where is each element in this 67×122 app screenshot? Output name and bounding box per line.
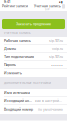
- staticText: по умолчанию: [38, 107, 63, 111]
- staticText: Изменить: [4, 71, 22, 75]
- staticText: Исходящий номер: [4, 99, 32, 103]
- staticText: Рабочая запись: [4, 39, 31, 43]
- button[interactable]: Пароль: [0, 61, 67, 69]
- button[interactable]: Изменить: [0, 69, 67, 77]
- staticText: sip.101.ru: [49, 39, 63, 43]
- staticText: 9:41: [4, 0, 10, 4]
- staticText: ⏺ ▮: [59, 0, 63, 4]
- button[interactable]: Профиль: [62, 4, 65, 9]
- staticText: Входящий номер: [4, 107, 33, 111]
- staticText: Заказать продление: [16, 22, 51, 26]
- button[interactable]: Домен: [0, 45, 67, 53]
- staticText: как в настройках: [35, 99, 63, 103]
- staticText: sip.101.ru: [49, 55, 63, 59]
- button[interactable]: Заказать продление: [2, 19, 65, 29]
- staticText: voip.ru: [52, 47, 63, 51]
- button[interactable]: Исходящий номер: [0, 97, 67, 105]
- staticText: Пароль: [4, 63, 16, 67]
- staticText: УЧЕТНАЯ ЗАПИСЬ: [4, 31, 31, 35]
- staticText: Тип подключения: [4, 55, 34, 59]
- staticText: Домен: [4, 47, 16, 51]
- button[interactable]: Входящий номер: [0, 105, 67, 114]
- button[interactable]: Имя источника: [0, 89, 67, 97]
- staticText: Учетная запись: [34, 4, 61, 8]
- button[interactable]: Тип подключения: [0, 53, 67, 61]
- staticText: Имя источника: [4, 91, 30, 95]
- staticText: Рейтинг записи: [2, 4, 28, 8]
- staticText: SIP: [45, 8, 50, 11]
- button[interactable]: Рабочая запись: [0, 37, 67, 45]
- staticText: ДОПОЛНИТЕЛЬНЫЕ НАСТРОЙКИ: [4, 81, 51, 85]
- staticText: ••••••: [51, 63, 63, 67]
